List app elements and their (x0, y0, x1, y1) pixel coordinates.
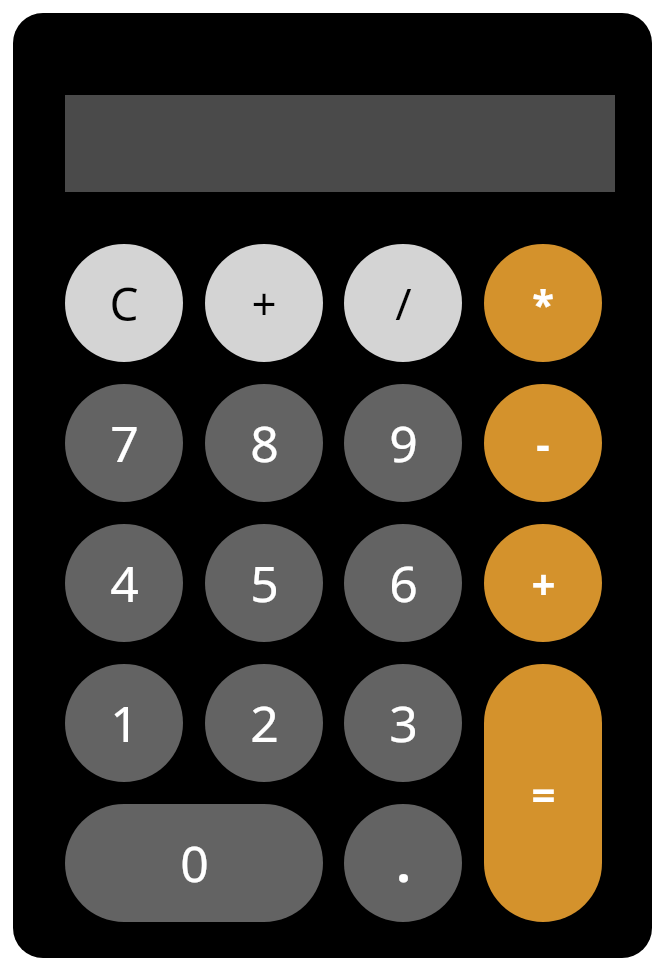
button[interactable]: / (344, 244, 462, 362)
button[interactable]: 7 (65, 384, 183, 502)
staticText: . (396, 829, 411, 897)
staticText: 1 (110, 689, 139, 757)
staticText: + (251, 273, 277, 333)
button[interactable]: - (484, 384, 602, 502)
button[interactable]: 6 (344, 524, 462, 642)
button[interactable]: 9 (344, 384, 462, 502)
staticText: 3 (389, 689, 418, 757)
staticText: + (531, 555, 556, 612)
button[interactable]: 3 (344, 664, 462, 782)
button[interactable]: 0 (65, 804, 323, 922)
staticText: 4 (110, 549, 139, 617)
staticText: 8 (250, 409, 279, 477)
staticText: / (395, 273, 412, 333)
button[interactable]: + (205, 244, 323, 362)
staticText: 5 (250, 549, 279, 617)
staticText: 7 (110, 409, 139, 477)
button[interactable]: C (65, 244, 183, 362)
button[interactable]: 1 (65, 664, 183, 782)
staticText: C (109, 272, 139, 335)
button[interactable]: 8 (205, 384, 323, 502)
staticText: 6 (389, 549, 418, 617)
button[interactable]: 2 (205, 664, 323, 782)
button[interactable]: * (484, 244, 602, 362)
staticText: = (531, 765, 556, 822)
staticText: 0 (180, 829, 209, 897)
button[interactable]: 5 (205, 524, 323, 642)
staticText: * (532, 276, 554, 330)
button[interactable]: + (484, 524, 602, 642)
button[interactable]: . (344, 804, 462, 922)
staticText: 9 (389, 409, 418, 477)
button[interactable]: = (484, 664, 602, 922)
staticText: 2 (250, 689, 279, 757)
staticText: - (536, 415, 550, 472)
button[interactable]: 4 (65, 524, 183, 642)
